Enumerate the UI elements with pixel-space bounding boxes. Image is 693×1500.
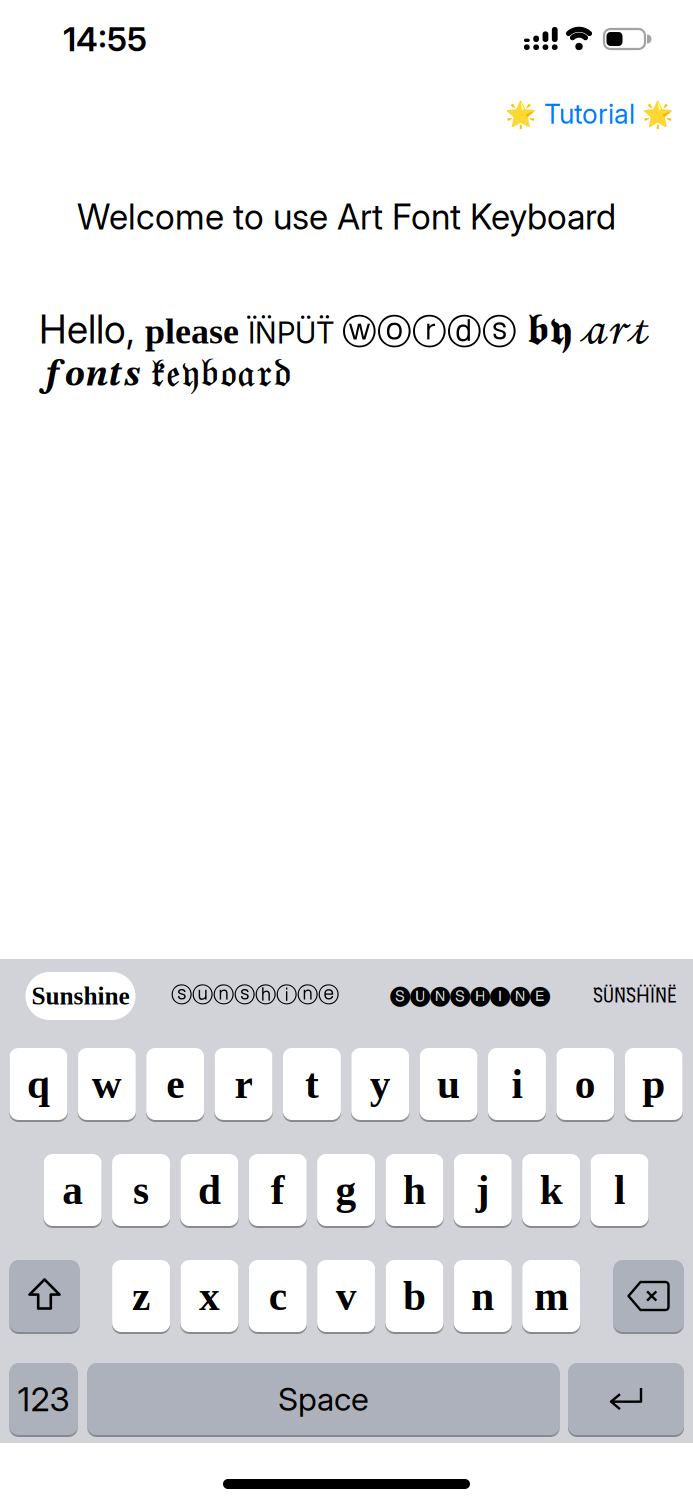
button[interactable]: Sunshine xyxy=(25,972,135,1020)
staticText: Hello, xyxy=(39,306,145,353)
staticText: m xyxy=(534,1273,568,1319)
staticText: ⓦⓞⓡⓓⓢ xyxy=(342,311,527,353)
staticText: a xyxy=(62,1167,83,1213)
button[interactable]: q xyxy=(9,1048,67,1120)
staticText: x xyxy=(199,1273,220,1319)
button[interactable]: a xyxy=(44,1154,102,1226)
staticText: p xyxy=(642,1061,665,1107)
staticText: b xyxy=(403,1273,426,1319)
staticText: e xyxy=(166,1061,184,1107)
staticText: k xyxy=(540,1167,563,1213)
button[interactable]: d xyxy=(180,1154,238,1226)
staticText: n xyxy=(471,1273,494,1319)
staticText: d xyxy=(198,1167,221,1213)
button[interactable]: l xyxy=(590,1154,648,1226)
button[interactable]: n xyxy=(454,1260,512,1332)
staticText: g xyxy=(336,1167,357,1213)
staticText: o xyxy=(575,1061,596,1107)
button[interactable]: e xyxy=(146,1048,204,1120)
staticText: 🅢🅤🅝🅢🅗🅘🅝🅔 xyxy=(390,985,550,1005)
button[interactable]: x xyxy=(180,1260,238,1332)
staticText: v xyxy=(336,1273,357,1319)
button[interactable]: Return xyxy=(568,1363,684,1435)
staticText: Sunshine xyxy=(31,982,129,1010)
button[interactable]: Space xyxy=(87,1363,559,1435)
staticText: 𝖇𝖞 xyxy=(527,313,582,353)
staticText: t xyxy=(305,1061,319,1107)
staticText: please xyxy=(145,311,248,351)
staticText: u xyxy=(437,1061,460,1107)
button[interactable]: b xyxy=(385,1260,443,1332)
button[interactable]: h xyxy=(385,1154,443,1226)
button[interactable]: 🌟 xyxy=(505,98,674,130)
button[interactable]: 🅢🅤🅝🅢🅗🅘🅝🅔 xyxy=(390,985,550,1005)
staticText: r xyxy=(234,1061,252,1107)
button[interactable]: s xyxy=(112,1154,170,1226)
staticText: y xyxy=(370,1061,391,1107)
staticText: ÏN̈PÜT̈ xyxy=(248,315,342,350)
button[interactable]: v xyxy=(317,1260,375,1332)
staticText: i xyxy=(511,1061,522,1107)
button[interactable]: y xyxy=(351,1048,409,1120)
button[interactable]: Shift xyxy=(9,1260,79,1332)
button[interactable]: f xyxy=(249,1154,307,1226)
staticText: j xyxy=(476,1167,490,1213)
staticText: 𝔨𝔢𝔶𝔟𝔬𝔞𝔯𝔡 xyxy=(150,357,292,394)
staticText: ⓢⓤⓝⓢⓗⓘⓝⓔ xyxy=(171,982,339,1008)
staticText: z xyxy=(132,1273,150,1319)
staticText: w xyxy=(92,1061,122,1107)
staticText: 🌟 xyxy=(505,99,537,129)
staticText: q xyxy=(27,1061,50,1107)
button[interactable]: Delete xyxy=(613,1260,683,1332)
button[interactable]: ⓢⓤⓝⓢⓗⓘⓝⓔ xyxy=(171,982,339,1008)
staticText: c xyxy=(269,1273,287,1319)
staticText: f xyxy=(271,1167,285,1213)
button[interactable]: S̈ÜN̈S̈ḦÏN̈Ë xyxy=(593,985,677,1007)
staticText: l xyxy=(614,1167,625,1213)
button[interactable]: k xyxy=(522,1154,580,1226)
button[interactable]: u xyxy=(420,1048,478,1120)
staticText: S̈ÜN̈S̈ḦÏN̈Ë xyxy=(593,985,677,1007)
staticText: Space xyxy=(278,1380,369,1418)
button[interactable]: g xyxy=(317,1154,375,1226)
button[interactable]: o xyxy=(556,1048,614,1120)
staticText: s xyxy=(133,1167,149,1213)
staticText: h xyxy=(403,1167,426,1213)
button[interactable]: j xyxy=(454,1154,512,1226)
staticText: 123 xyxy=(17,1379,69,1419)
button[interactable]: z xyxy=(112,1260,170,1332)
button[interactable]: i xyxy=(488,1048,546,1120)
button[interactable]: t xyxy=(283,1048,341,1120)
staticText: 🌟 xyxy=(642,99,674,129)
staticText: 𝒶𝓇𝓉 xyxy=(582,313,650,353)
staticText: 14:55 xyxy=(63,19,147,59)
button[interactable]: m xyxy=(522,1260,580,1332)
staticText: 𝒇𝒐𝒏𝒕𝒔 xyxy=(39,357,150,394)
button[interactable]: w xyxy=(78,1048,136,1120)
staticText: Tutorial xyxy=(544,98,635,130)
button[interactable]: p xyxy=(625,1048,683,1120)
button[interactable]: c xyxy=(249,1260,307,1332)
button[interactable]: Numbers xyxy=(9,1363,77,1435)
button[interactable]: r xyxy=(214,1048,272,1120)
staticText: Welcome to use Art Font Keyboard xyxy=(77,196,616,238)
